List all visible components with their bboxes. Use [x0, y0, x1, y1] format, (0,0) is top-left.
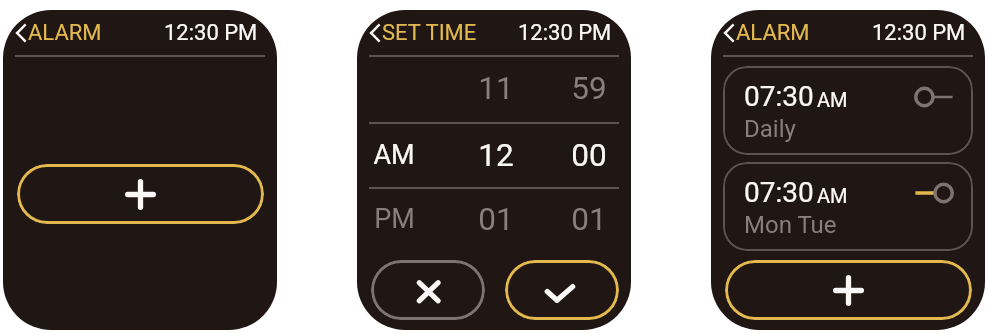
staticText: 07:30	[744, 80, 814, 113]
staticText: PM	[374, 203, 415, 235]
staticText: AM	[817, 184, 848, 207]
button[interactable]: PM	[357, 197, 631, 241]
staticText: 00	[571, 137, 607, 174]
button[interactable]: Add alarm	[17, 164, 264, 224]
button[interactable]: Alarm off	[914, 85, 954, 109]
button[interactable]: Confirm	[505, 260, 619, 320]
staticText: SET TIME	[382, 20, 477, 46]
staticText: 01	[478, 201, 514, 238]
staticText: 07:30	[744, 176, 814, 209]
staticText: AM	[817, 88, 848, 111]
staticText: AM	[373, 139, 415, 171]
staticText: ALARM	[736, 20, 810, 46]
staticText: 12	[478, 137, 514, 174]
button[interactable]: AM	[357, 133, 631, 177]
staticText: 12:30 PM	[518, 20, 612, 46]
staticText: Mon Tue	[744, 211, 837, 239]
button[interactable]: Alarm on	[914, 181, 954, 205]
staticText: Daily	[744, 115, 796, 143]
staticText: ALARM	[28, 20, 102, 46]
staticText: 59	[571, 70, 607, 107]
button[interactable]: Back	[370, 20, 477, 46]
button[interactable]: Back	[724, 20, 810, 46]
button[interactable]: Add alarm	[725, 260, 972, 320]
button[interactable]: 07:30	[723, 162, 973, 251]
staticText: 01	[571, 201, 607, 238]
button[interactable]: 07:30	[723, 66, 973, 155]
button[interactable]: Cancel	[371, 260, 485, 320]
staticText: 12:30 PM	[872, 20, 966, 46]
button[interactable]: Back	[16, 20, 102, 46]
staticText: 11	[478, 70, 514, 107]
staticText: 12:30 PM	[164, 20, 258, 46]
button[interactable]: 11	[357, 66, 631, 110]
